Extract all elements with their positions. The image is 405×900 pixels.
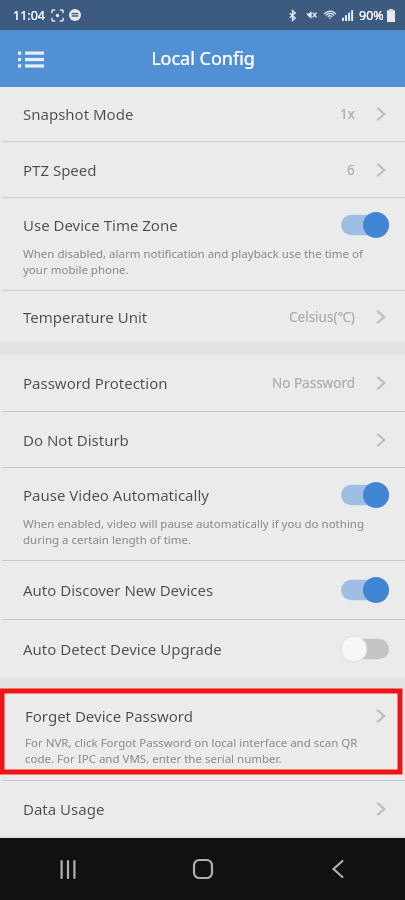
staticText: Password Protection bbox=[23, 373, 168, 393]
staticText: For NVR, click Forgot Password on local … bbox=[25, 735, 385, 766]
button[interactable]: Toggle on bbox=[341, 577, 389, 603]
staticText: Snapshot Mode bbox=[23, 104, 134, 124]
button[interactable]: Toggle off bbox=[341, 636, 389, 662]
button[interactable]: Data Usage bbox=[0, 781, 405, 836]
staticText: Do Not Disturb bbox=[23, 430, 129, 450]
button[interactable]: Menu bbox=[8, 36, 54, 82]
button[interactable]: Toggle on bbox=[341, 482, 389, 508]
staticText: 1x bbox=[340, 105, 355, 123]
button[interactable]: Temperature Unit bbox=[0, 291, 405, 342]
staticText: When enabled, video will pause automatic… bbox=[23, 516, 385, 547]
button[interactable]: Forget Device Password bbox=[0, 691, 405, 780]
staticText: 90% bbox=[359, 7, 384, 24]
staticText: Local Config bbox=[151, 46, 255, 71]
staticText: Temperature Unit bbox=[23, 307, 148, 327]
staticText: Auto Discover New Devices bbox=[23, 580, 341, 600]
button[interactable]: Pause Video Automatically bbox=[0, 468, 405, 560]
staticText: Auto Detect Device Upgrade bbox=[23, 639, 341, 659]
staticText: Data Usage bbox=[23, 799, 105, 819]
button[interactable]: Use Device Time Zone bbox=[0, 198, 405, 290]
button[interactable]: Home bbox=[135, 838, 270, 900]
staticText: Use Device Time Zone bbox=[23, 215, 341, 235]
staticText: Forget Device Password bbox=[25, 706, 193, 726]
staticText: 6 bbox=[347, 161, 355, 179]
staticText: No Password bbox=[272, 374, 355, 392]
staticText: PTZ Speed bbox=[23, 160, 97, 180]
staticText: Celsius(℃) bbox=[289, 308, 355, 326]
button[interactable]: Snapshot Mode bbox=[0, 87, 405, 141]
button[interactable]: Auto Detect Device Upgrade bbox=[0, 620, 405, 678]
button[interactable]: Toggle on bbox=[341, 212, 389, 238]
button[interactable]: Do Not Disturb bbox=[0, 412, 405, 467]
button[interactable]: Back bbox=[270, 838, 405, 900]
button[interactable]: Recents bbox=[0, 838, 135, 900]
button[interactable]: Auto Discover New Devices bbox=[0, 561, 405, 619]
staticText: Pause Video Automatically bbox=[23, 485, 341, 505]
button[interactable]: PTZ Speed bbox=[0, 142, 405, 197]
button[interactable]: Password Protection bbox=[0, 355, 405, 411]
staticText: 11:04 bbox=[13, 7, 45, 24]
staticText: When disabled, alarm notification and pl… bbox=[23, 246, 385, 277]
